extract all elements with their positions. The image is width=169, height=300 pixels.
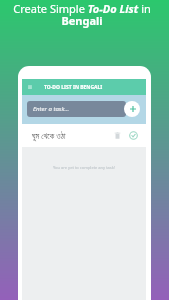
staticText: You are yet to complete any task! [22,165,146,170]
button[interactable]: Mark complete [129,131,138,140]
button[interactable]: Menu [26,83,34,91]
staticText: Create Simple To-Do List in [13,1,151,16]
button[interactable]: Add task [124,101,140,117]
button[interactable]: Enter a task... [27,101,126,117]
button[interactable]: ঘুম থেকে ওঠা [32,124,138,147]
staticText: TO-DO LIST IN BENGALI [44,84,103,91]
staticText: Bengali [61,13,103,28]
staticText: Enter a task... [33,105,70,113]
staticText: ঘুম থেকে ওঠা [32,130,66,141]
button[interactable]: Delete task [113,131,122,140]
